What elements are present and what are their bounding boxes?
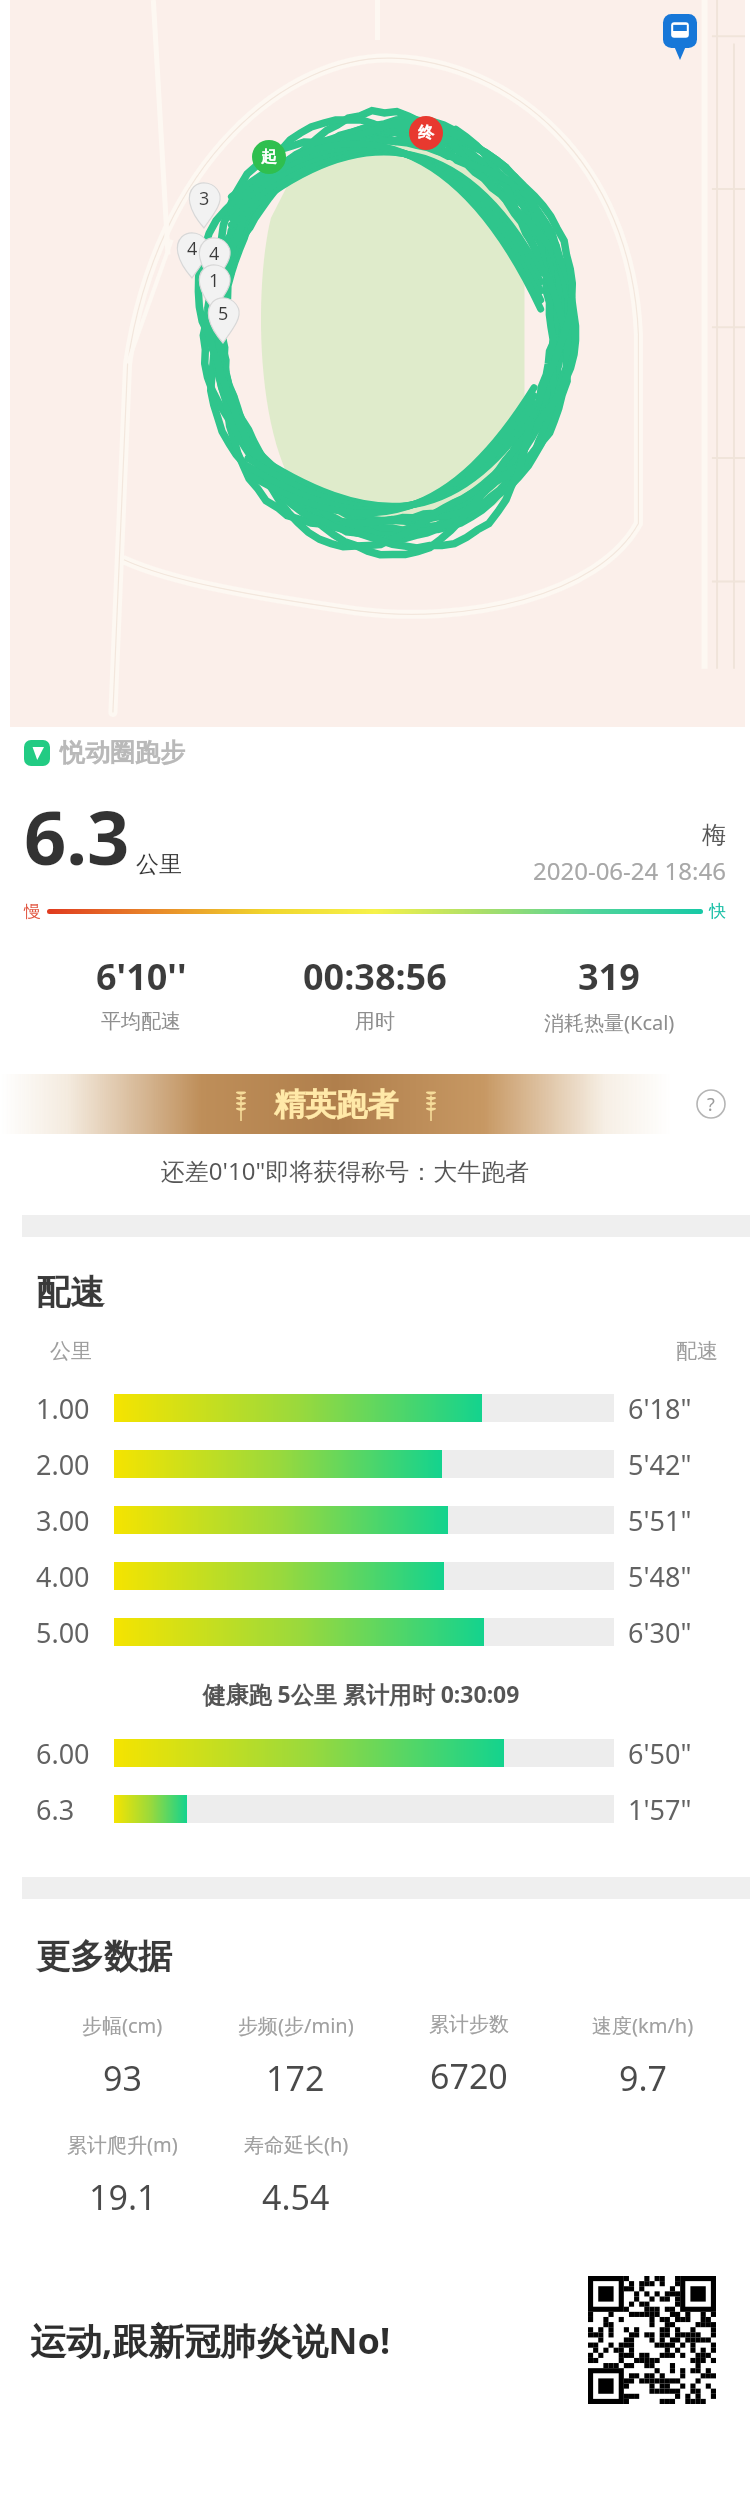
- staticText: 6.3: [24, 786, 130, 887]
- staticText: 终: [418, 123, 434, 143]
- button[interactable]: Help: [672, 1072, 750, 1136]
- staticText: 寿命延长(h): [244, 2131, 349, 2158]
- staticText: 用时: [355, 1009, 395, 1034]
- staticText: 还差0'10"即将获得称号：大牛跑者: [0, 1154, 690, 1187]
- staticText: 9.7: [619, 2055, 668, 2101]
- staticText: 5'42": [628, 1446, 726, 1483]
- staticText: 配速: [36, 1271, 104, 1314]
- staticText: 6.00: [36, 1735, 114, 1772]
- staticText: 5: [218, 301, 229, 326]
- staticText: ?: [707, 1092, 715, 1117]
- staticText: 平均配速: [101, 1009, 181, 1034]
- button[interactable]: 3.00: [36, 1492, 726, 1548]
- staticText: 起: [261, 147, 277, 167]
- staticText: 19.1: [89, 2174, 157, 2220]
- button[interactable]: 6.3: [36, 1781, 726, 1837]
- button[interactable]: 5.00: [36, 1604, 726, 1660]
- staticText: 公里: [136, 850, 182, 879]
- staticText: 4: [187, 236, 198, 261]
- staticText: 悦动圈跑步: [60, 737, 185, 768]
- staticText: 3.00: [36, 1502, 114, 1539]
- button[interactable]: 1.00: [36, 1380, 726, 1436]
- staticText: 93: [103, 2055, 142, 2101]
- staticText: 更多数据: [36, 1935, 172, 1978]
- button[interactable]: QR code: [588, 2276, 716, 2404]
- staticText: 1'57": [628, 1791, 726, 1828]
- staticText: 1: [209, 268, 220, 293]
- staticText: 6'50": [628, 1735, 726, 1772]
- staticText: 00:38:56: [303, 952, 447, 1001]
- staticText: 4: [209, 241, 220, 266]
- staticText: 5'51": [628, 1502, 726, 1539]
- staticText: 健康跑 5公里 累计用时 0:30:09: [36, 1678, 686, 1709]
- staticText: 慢: [24, 901, 41, 922]
- staticText: 2020-06-24 18:46: [533, 854, 726, 887]
- staticText: 6720: [430, 2053, 508, 2099]
- staticText: 累计步数: [429, 2012, 509, 2037]
- staticText: 5'48": [628, 1558, 726, 1595]
- staticText: 运动,跟新冠肺炎说No!: [30, 2316, 391, 2365]
- other: Bus stop: [663, 14, 697, 60]
- button[interactable]: 4.00: [36, 1548, 726, 1604]
- staticText: 5.00: [36, 1614, 114, 1651]
- staticText: 4.00: [36, 1558, 114, 1595]
- staticText: 172: [266, 2055, 325, 2101]
- button[interactable]: 2.00: [36, 1436, 726, 1492]
- staticText: 3: [199, 186, 210, 211]
- staticText: 梅: [702, 820, 726, 850]
- staticText: 精英跑者: [274, 1085, 398, 1124]
- staticText: 2.00: [36, 1446, 114, 1483]
- button[interactable]: 6.00: [36, 1725, 726, 1781]
- staticText: 6.3: [36, 1791, 114, 1828]
- staticText: 累计爬升(m): [67, 2131, 178, 2158]
- button[interactable]: 精英跑者: [0, 1074, 672, 1134]
- staticText: 319: [578, 952, 640, 1001]
- staticText: 配速: [676, 1338, 718, 1364]
- staticText: 6'18": [628, 1390, 726, 1427]
- staticText: 消耗热量(Kcal): [544, 1009, 675, 1036]
- staticText: 4.54: [262, 2174, 330, 2220]
- staticText: 6'30": [628, 1614, 726, 1651]
- staticText: 1.00: [36, 1390, 114, 1427]
- staticText: 快: [709, 901, 726, 922]
- staticText: 公里: [50, 1338, 92, 1364]
- staticText: 速度(km/h): [592, 2012, 694, 2039]
- staticText: 步幅(cm): [82, 2012, 163, 2039]
- staticText: 6'10'': [96, 952, 187, 1001]
- staticText: 步频(步/min): [238, 2012, 354, 2039]
